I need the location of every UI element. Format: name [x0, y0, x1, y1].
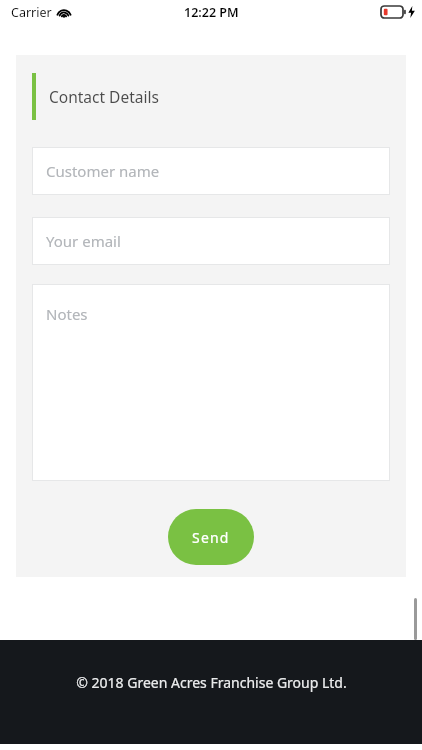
staticText: © 2018 Green Acres Franchise Group Ltd. — [76, 673, 347, 692]
staticText: 12:22 PM — [184, 4, 239, 21]
button[interactable]: Send — [168, 509, 254, 565]
button[interactable]: Customer name — [32, 147, 390, 195]
staticText: Notes — [46, 304, 88, 324]
button[interactable]: Notes — [32, 284, 390, 481]
staticText: Customer name — [46, 161, 160, 181]
staticText: Your email — [46, 231, 121, 251]
button[interactable]: Your email — [32, 217, 390, 265]
staticText: Carrier — [11, 4, 52, 21]
staticText: Send — [192, 528, 230, 547]
staticText: Contact Details — [49, 86, 159, 107]
